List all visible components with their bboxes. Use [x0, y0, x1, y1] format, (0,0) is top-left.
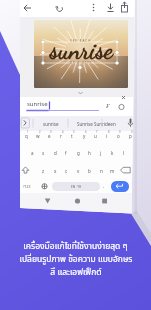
staticText: ?123 — [23, 184, 31, 189]
button[interactable]: v — [72, 165, 84, 177]
staticText: r — [60, 133, 62, 139]
staticText: sunrise — [50, 35, 113, 65]
staticText: y — [83, 133, 86, 139]
button[interactable]: j — [95, 147, 107, 159]
staticText: z — [42, 168, 45, 174]
staticText: 9 — [119, 130, 121, 134]
staticText: 7 — [96, 130, 98, 134]
staticText: Sunrise — [77, 121, 93, 127]
staticText: t — [71, 133, 73, 139]
button[interactable]: p — [124, 130, 135, 142]
button[interactable]: l — [118, 147, 130, 159]
button[interactable]: Sunrideen — [90, 117, 120, 130]
button[interactable]: . — [98, 181, 109, 192]
staticText: o — [117, 133, 120, 139]
staticText: f — [65, 150, 67, 156]
staticText: j — [100, 150, 102, 156]
staticText: เครื่องมือแก้ไขที่ใช้งานง่ายสุด ๆ — [23, 240, 128, 253]
button[interactable]: w — [32, 130, 44, 142]
staticText: 3 — [50, 130, 52, 134]
staticText: h — [88, 150, 91, 156]
staticText: q — [25, 133, 28, 139]
button[interactable]: k — [106, 147, 118, 159]
staticText: 6 — [85, 130, 87, 134]
staticText: w — [36, 133, 40, 139]
button[interactable]: c — [60, 165, 72, 177]
button[interactable]: sunrise — [36, 117, 66, 130]
staticText: สี และเอฟเฟ็กต์ — [50, 266, 102, 279]
staticText: SEE EACH — [70, 39, 92, 43]
staticText: i — [106, 133, 108, 139]
staticText: sunrise — [43, 121, 59, 127]
staticText: n — [100, 168, 103, 174]
staticText: sunrise — [27, 100, 48, 108]
button[interactable]: u — [89, 130, 101, 142]
staticText: เปลี่ยนรูปภาพ ข้อความ แบบอักษร — [19, 253, 133, 266]
button[interactable]: m — [106, 165, 118, 177]
staticText: m — [110, 168, 115, 174]
button[interactable]: d — [49, 147, 61, 159]
button[interactable]: z — [37, 165, 49, 177]
staticText: 8 — [108, 130, 110, 134]
button[interactable]: t — [66, 130, 78, 142]
staticText: p — [129, 133, 132, 139]
button[interactable]: h — [83, 147, 95, 159]
staticText: g — [77, 150, 80, 156]
button[interactable]: s — [37, 147, 49, 159]
button[interactable]: b — [83, 165, 95, 177]
button[interactable]: n — [95, 165, 107, 177]
button[interactable]: f — [60, 147, 72, 159]
staticText: x — [54, 168, 57, 174]
button[interactable]: y — [78, 130, 90, 142]
staticText: . — [103, 183, 105, 190]
staticText: d — [54, 150, 57, 156]
staticText: e — [48, 133, 51, 139]
staticText: v — [77, 168, 80, 174]
staticText: 4 — [62, 130, 64, 134]
button[interactable] — [111, 181, 129, 192]
staticText: 5 — [73, 130, 75, 134]
staticText: u — [94, 133, 97, 139]
button[interactable]: Sunrise — [70, 117, 100, 130]
staticText: F — [106, 102, 110, 110]
button[interactable]: ?123 — [20, 181, 34, 192]
staticText: 0 — [131, 130, 133, 134]
staticText: a — [31, 150, 34, 156]
staticText: l — [123, 150, 125, 156]
staticText: k — [111, 150, 114, 156]
staticText: s — [42, 150, 45, 156]
staticText: Sunrideen — [94, 121, 116, 127]
button[interactable]: g — [72, 147, 84, 159]
button[interactable]: r — [55, 130, 67, 142]
button[interactable]: x — [49, 165, 61, 177]
button[interactable]: q — [20, 130, 32, 142]
button[interactable]: a — [26, 147, 38, 159]
button[interactable] — [39, 181, 50, 192]
staticText: AS A GIFT — [70, 61, 93, 65]
button[interactable]: e — [43, 130, 55, 142]
staticText: b — [88, 168, 91, 174]
staticText: 2 — [39, 130, 41, 134]
staticText: 1 — [27, 130, 29, 134]
button[interactable]: EN · TH — [52, 182, 100, 191]
button[interactable]: SEE EACH — [34, 20, 128, 88]
staticText: EN · TH — [71, 185, 82, 189]
button[interactable]: o — [112, 130, 124, 142]
staticText: c — [65, 168, 68, 174]
button[interactable]: i — [101, 130, 113, 142]
